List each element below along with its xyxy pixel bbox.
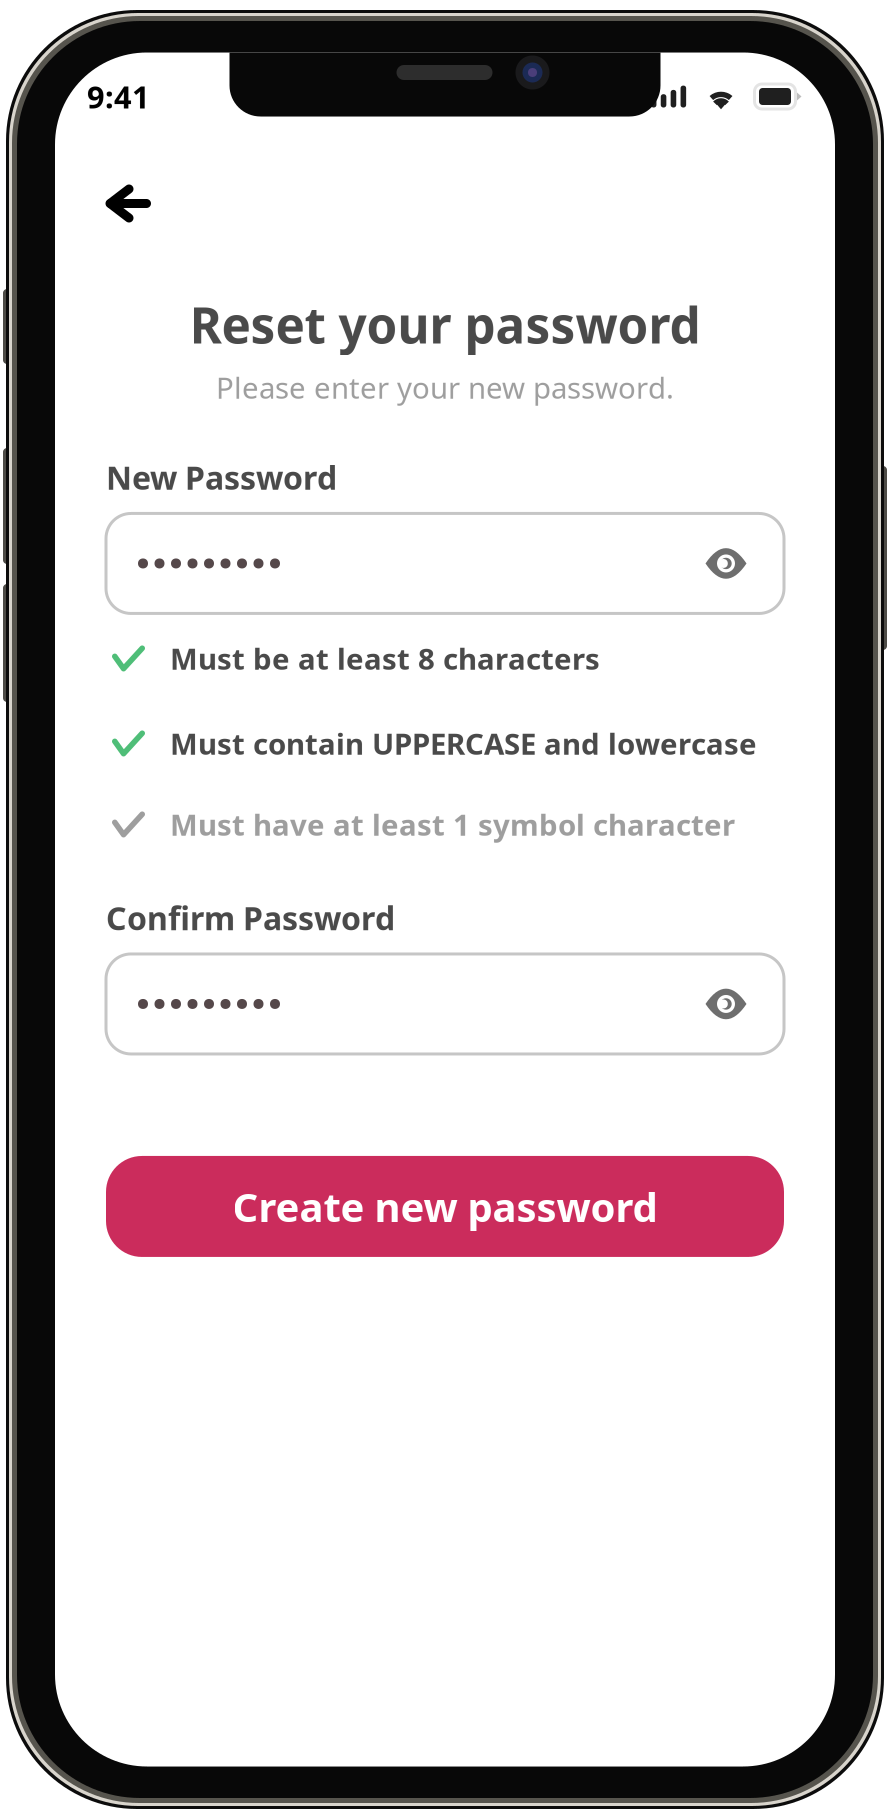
staticText: 9:41 [87,76,150,117]
staticText: Must have at least 1 symbol character [170,805,735,844]
button[interactable]: Create new password [106,1156,784,1257]
staticText: Create new password [232,1180,657,1233]
button[interactable]: Back [99,179,158,228]
staticText: New Password [106,456,337,498]
staticText: Reset your password [189,291,700,357]
button[interactable]: Show password [697,534,755,592]
button[interactable]: Show password [697,975,755,1033]
staticText: Must contain UPPERCASE and lowercase [170,724,757,763]
staticText: Please enter your new password. [216,368,674,407]
staticText: Must be at least 8 characters [170,639,600,678]
staticText: Confirm Password [106,896,395,939]
